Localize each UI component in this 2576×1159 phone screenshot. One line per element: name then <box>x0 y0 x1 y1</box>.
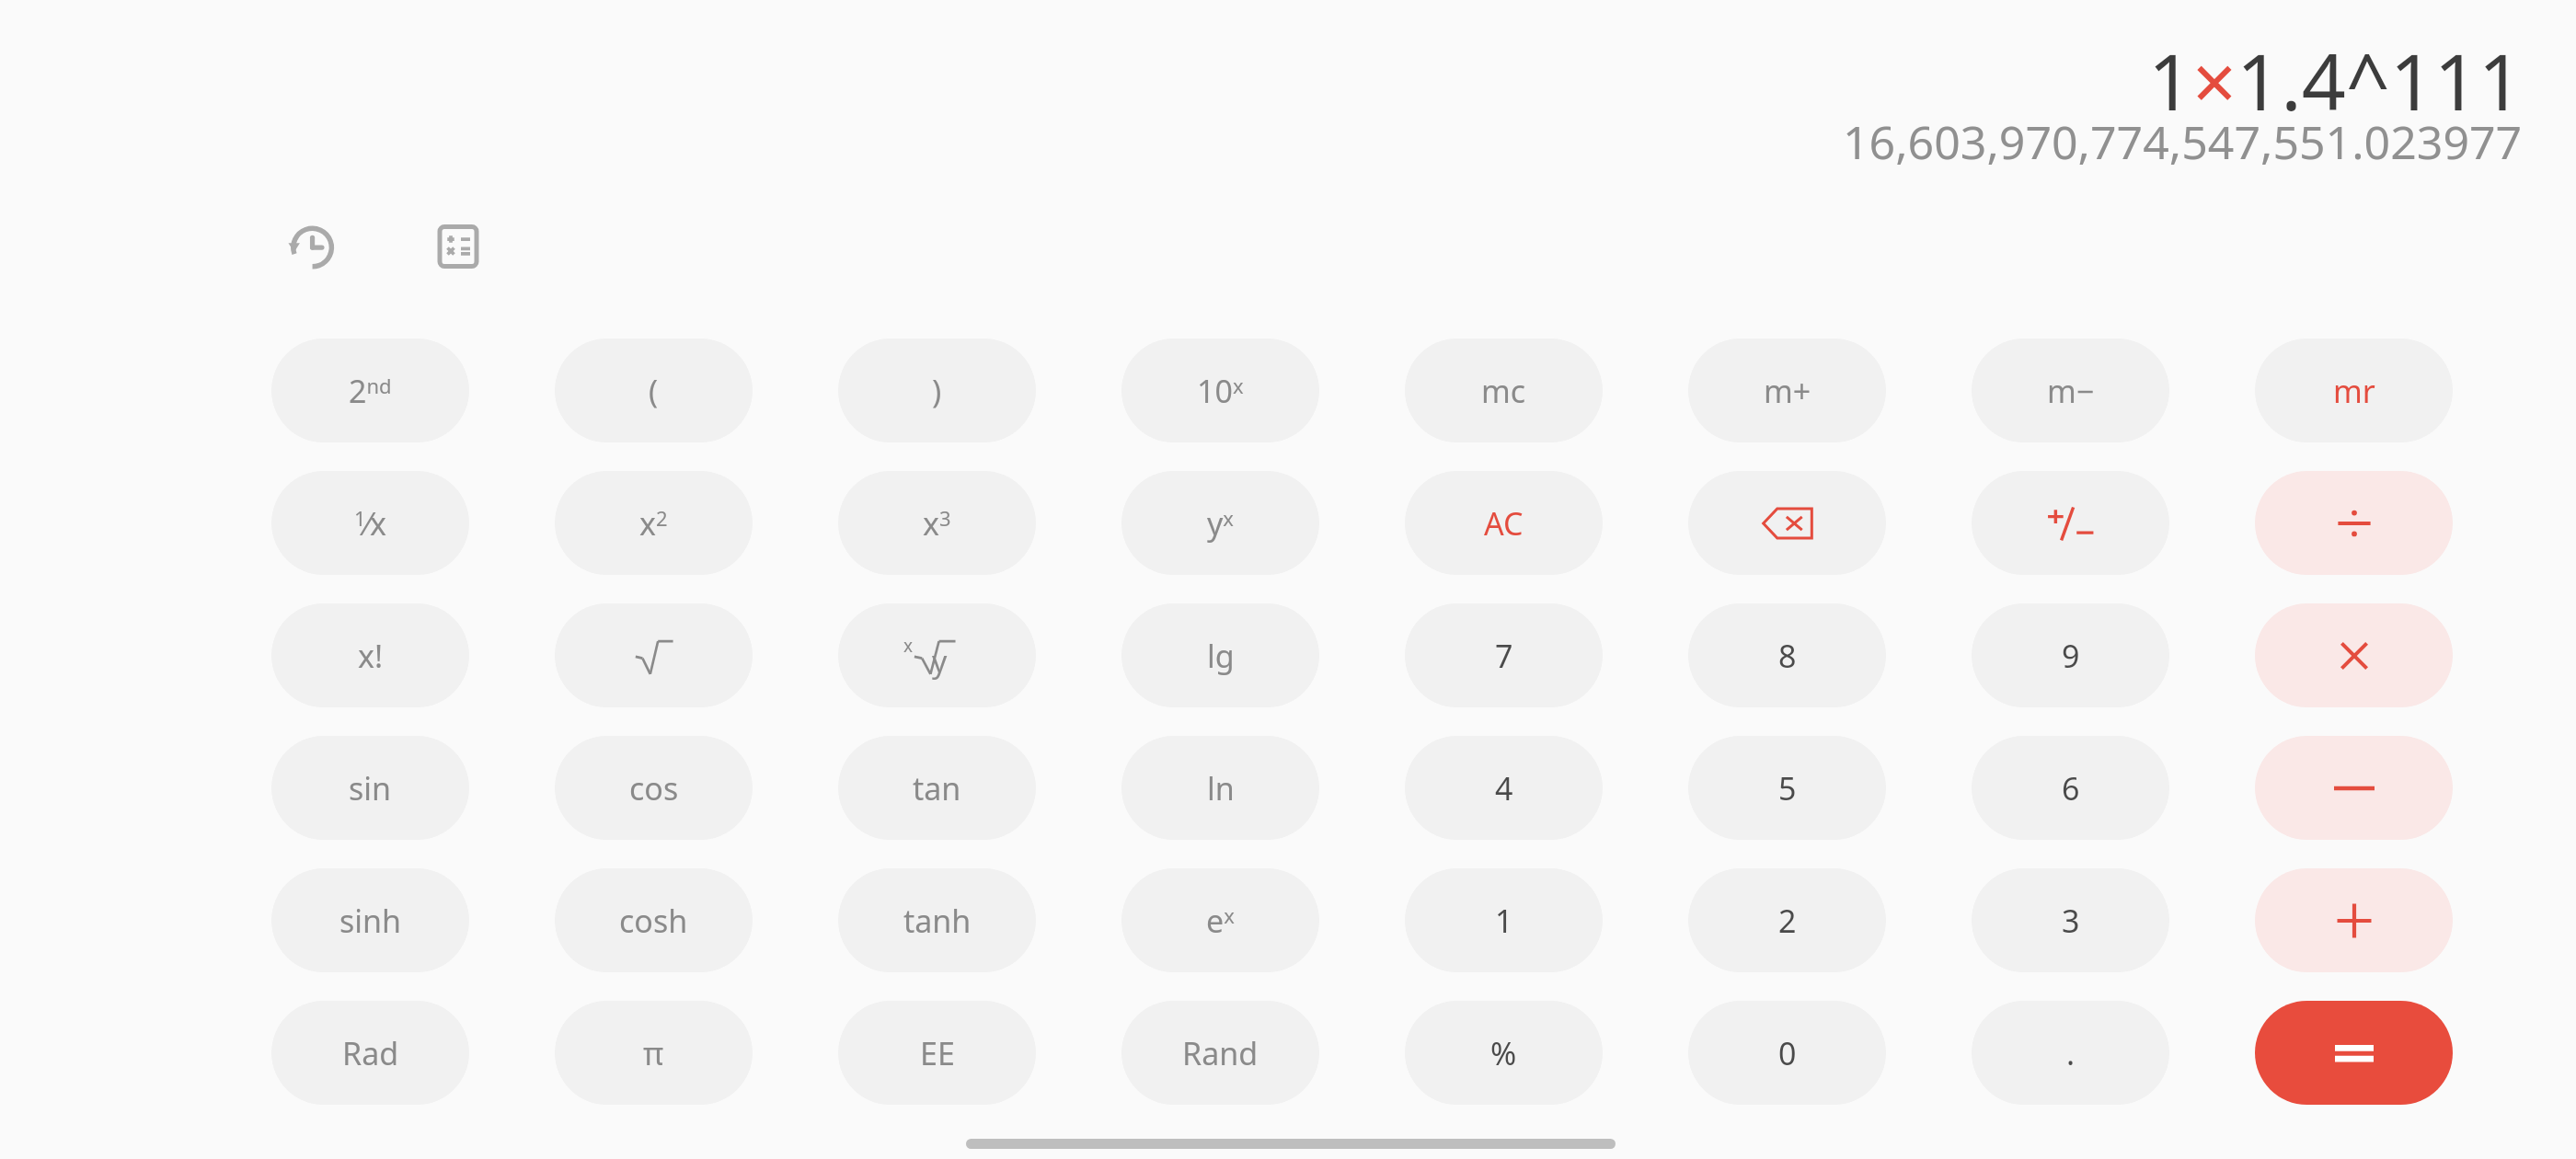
staticText: Rand <box>1182 1032 1259 1074</box>
staticText: 7 <box>1495 635 1513 677</box>
staticText: π <box>643 1032 664 1074</box>
button[interactable]: AC <box>1405 471 1603 575</box>
button[interactable]: 1⁄x <box>271 471 469 575</box>
staticText: sinh <box>339 900 402 942</box>
staticText: m− <box>2047 370 2095 412</box>
staticText: 1×1.4^111 <box>2148 28 2523 132</box>
staticText: EE <box>920 1032 955 1074</box>
staticText: cos <box>629 767 679 809</box>
button[interactable]: Equals <box>2255 1001 2453 1105</box>
staticText: y <box>932 641 948 682</box>
button[interactable]: 6 <box>1972 736 2169 840</box>
staticText: 4 <box>1495 767 1513 809</box>
staticText: 0 <box>1778 1032 1797 1074</box>
button[interactable]: 4 <box>1405 736 1603 840</box>
staticText: tanh <box>903 900 972 942</box>
staticText: 5 <box>1778 767 1797 809</box>
button[interactable]: Rad <box>271 1001 469 1105</box>
button[interactable]: π <box>555 1001 753 1105</box>
button[interactable]: Square root <box>555 603 753 707</box>
staticText: ) <box>932 370 942 412</box>
staticText: x! <box>358 635 384 677</box>
staticText: lg <box>1207 635 1235 677</box>
staticText: mc <box>1481 370 1526 412</box>
staticText: 8 <box>1778 635 1797 677</box>
staticText: . <box>2066 1032 2076 1074</box>
button[interactable]: m− <box>1972 339 2169 442</box>
button[interactable]: m+ <box>1688 339 1886 442</box>
button[interactable]: mc <box>1405 339 1603 442</box>
button[interactable]: % <box>1405 1001 1603 1105</box>
button[interactable]: cosh <box>555 868 753 972</box>
button[interactable]: Rand <box>1121 1001 1319 1105</box>
staticText: 16,603,970,774,547,551.023977 <box>1843 110 2523 173</box>
button[interactable]: Multiply <box>2255 603 2453 707</box>
staticText: 9 <box>2062 635 2080 677</box>
button[interactable]: mr <box>2255 339 2453 442</box>
button[interactable]: 9 <box>1972 603 2169 707</box>
button[interactable]: 2 <box>1688 868 1886 972</box>
button[interactable]: 8 <box>1688 603 1886 707</box>
button[interactable]: Backspace <box>1688 471 1886 575</box>
staticText: 3 <box>2062 900 2080 942</box>
button[interactable]: 5 <box>1688 736 1886 840</box>
staticText: ln <box>1207 767 1235 809</box>
button[interactable]: EE <box>838 1001 1036 1105</box>
button[interactable]: Subtract <box>2255 736 2453 840</box>
button[interactable]: x2 <box>555 471 753 575</box>
staticText: x3 <box>923 502 951 545</box>
staticText: ex <box>1206 900 1235 942</box>
button[interactable]: 2nd <box>271 339 469 442</box>
button[interactable]: yx <box>1121 471 1319 575</box>
button[interactable]: Plus minus <box>1972 471 2169 575</box>
button[interactable]: ex <box>1121 868 1319 972</box>
button[interactable]: x3 <box>838 471 1036 575</box>
staticText: 1⁄x <box>354 502 386 545</box>
staticText: 10x <box>1197 370 1244 412</box>
staticText: Rad <box>342 1032 399 1074</box>
staticText: x2 <box>639 502 668 545</box>
button[interactable]: Divide <box>2255 471 2453 575</box>
button[interactable]: sin <box>271 736 469 840</box>
button[interactable]: Calculator mode <box>416 204 500 289</box>
staticText: ( <box>649 370 659 412</box>
button[interactable]: History <box>269 204 353 289</box>
staticText: AC <box>1484 502 1524 545</box>
button[interactable]: sinh <box>271 868 469 972</box>
button[interactable]: 3 <box>1972 868 2169 972</box>
staticText: tan <box>913 767 961 809</box>
button[interactable]: . <box>1972 1001 2169 1105</box>
staticText: sin <box>349 767 392 809</box>
button[interactable]: ( <box>555 339 753 442</box>
staticText: mr <box>2333 370 2375 412</box>
button[interactable]: tan <box>838 736 1036 840</box>
button[interactable]: ln <box>1121 736 1319 840</box>
button[interactable]: ) <box>838 339 1036 442</box>
button[interactable]: tanh <box>838 868 1036 972</box>
staticText: 1 <box>1495 900 1513 942</box>
button[interactable]: x! <box>271 603 469 707</box>
staticText: x <box>903 634 914 658</box>
staticText: 2nd <box>349 370 392 412</box>
button[interactable]: 1 <box>1405 868 1603 972</box>
staticText: m+ <box>1764 370 1811 412</box>
button[interactable]: 10x <box>1121 339 1319 442</box>
staticText: 2 <box>1778 900 1797 942</box>
button[interactable]: cos <box>555 736 753 840</box>
button[interactable]: Add <box>2255 868 2453 972</box>
button[interactable]: lg <box>1121 603 1319 707</box>
staticText: cosh <box>619 900 688 942</box>
button[interactable]: 7 <box>1405 603 1603 707</box>
button[interactable]: Nth root <box>838 603 1036 707</box>
staticText: % <box>1490 1032 1517 1074</box>
staticText: 6 <box>2062 767 2080 809</box>
button[interactable]: 0 <box>1688 1001 1886 1105</box>
staticText: yx <box>1207 502 1234 545</box>
